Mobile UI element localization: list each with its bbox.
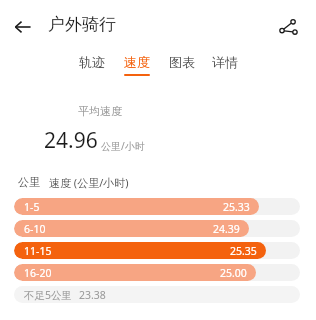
- staticText: 平均速度: [78, 104, 122, 118]
- staticText: 23.38: [79, 288, 106, 302]
- staticText: 25.33: [223, 200, 250, 214]
- button[interactable]: 图表: [163, 54, 201, 74]
- staticText: 公里/小时: [101, 139, 145, 153]
- button[interactable]: 轨迹: [73, 54, 111, 74]
- staticText: 轨迹: [79, 54, 105, 70]
- staticText: 16-20: [24, 266, 52, 280]
- staticText: 公里: [18, 175, 40, 189]
- button[interactable]: Back: [8, 12, 38, 42]
- staticText: 速度: [124, 54, 150, 70]
- button[interactable]: Share: [272, 11, 304, 43]
- staticText: 6-10: [24, 222, 46, 236]
- staticText: 详情: [212, 54, 238, 70]
- button[interactable]: 11-15: [14, 242, 300, 259]
- staticText: 不足5公里: [24, 288, 73, 302]
- staticText: 24.39: [213, 222, 240, 236]
- button[interactable]: 1-5: [14, 198, 300, 215]
- staticText: 图表: [169, 54, 195, 70]
- staticText: 速度 (公里/小时): [49, 175, 129, 190]
- button[interactable]: 6-10: [14, 220, 300, 237]
- staticText: 24.96: [44, 126, 98, 155]
- button[interactable]: 速度: [118, 54, 156, 76]
- button[interactable]: 不足5公里: [14, 286, 300, 303]
- staticText: 11-15: [24, 244, 52, 258]
- button[interactable]: 详情: [206, 54, 244, 74]
- staticText: 25.35: [230, 244, 257, 258]
- button[interactable]: 16-20: [14, 264, 300, 281]
- staticText: 户外骑行: [48, 14, 116, 35]
- staticText: 25.00: [220, 266, 247, 280]
- staticText: 1-5: [24, 200, 40, 214]
